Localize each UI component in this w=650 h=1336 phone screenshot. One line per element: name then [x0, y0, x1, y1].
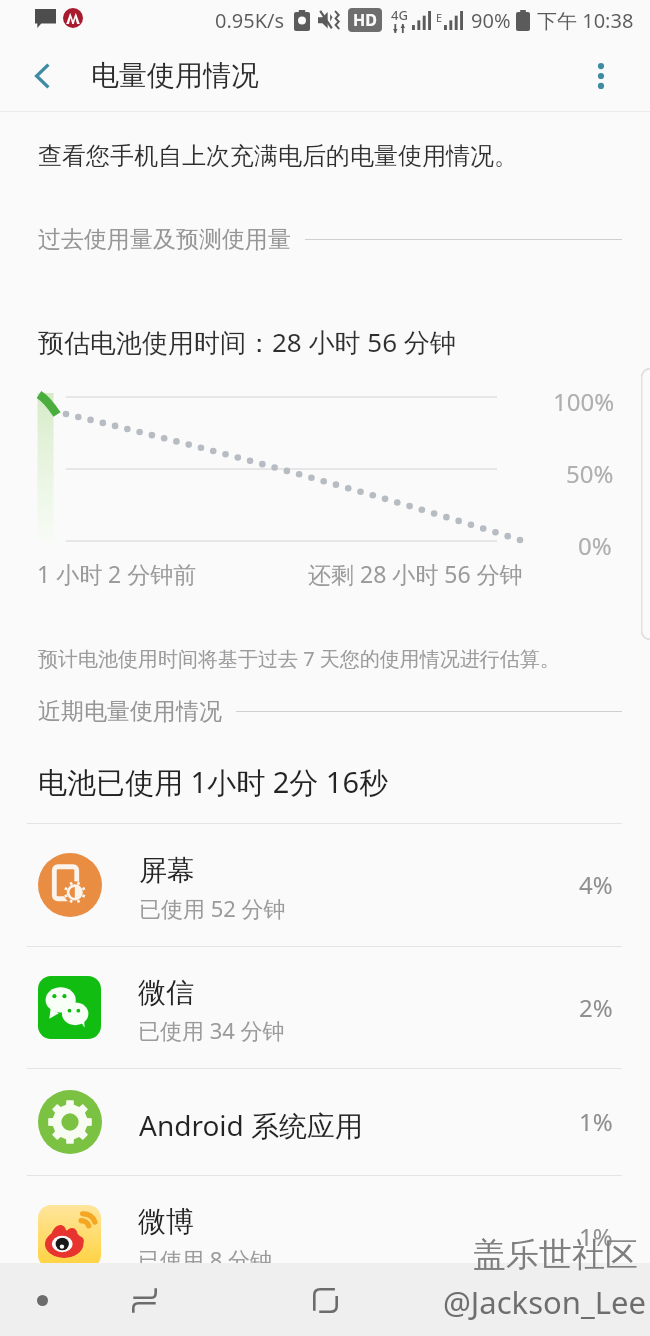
staticText: @Jackson_Lee [443, 1281, 646, 1323]
staticText: 0.95K/s [215, 7, 285, 34]
button[interactable]: Back [7, 40, 78, 111]
button[interactable]: 微信 [0, 946, 650, 1068]
staticText: 电量使用情况 [91, 58, 259, 93]
staticText: 预估电池使用时间：28 小时 56 分钟 [38, 324, 456, 360]
staticText: 电池已使用 1小时 2分 16秒 [38, 762, 388, 802]
staticText: 50% [566, 457, 614, 490]
button[interactable]: 屏幕 [0, 823, 650, 946]
staticText: 90% [471, 7, 511, 34]
staticText: 2% [579, 991, 613, 1024]
button[interactable]: More options [565, 40, 636, 111]
button[interactable]: Home [290, 1265, 360, 1335]
staticText: 1 小时 2 分钟前 [37, 558, 197, 589]
staticText: 4G [391, 6, 408, 24]
staticText: HD [353, 9, 377, 31]
staticText: Android 系统应用 [139, 1106, 364, 1144]
staticText: 已使用 34 分钟 [138, 1015, 285, 1045]
staticText: 已使用 8 分钟 [138, 1244, 273, 1274]
button[interactable]: 微博 [0, 1175, 650, 1297]
staticText: 1% [579, 1105, 613, 1138]
staticText: 100% [553, 385, 615, 418]
staticText: 查看您手机自上次充满电后的电量使用情况。 [38, 141, 518, 171]
staticText: 0% [578, 529, 612, 562]
staticText: 预计电池使用时间将基于过去 7 天您的使用情况进行估算。 [38, 645, 560, 672]
staticText: 微博 [138, 1204, 194, 1239]
staticText: 下午 10:38 [537, 7, 634, 34]
staticText: 近期电量使用情况 [38, 697, 222, 726]
staticText: 微信 [138, 975, 194, 1010]
staticText: 屏幕 [139, 853, 195, 888]
button[interactable]: Recents [109, 1265, 179, 1335]
button[interactable]: Menu [7, 1265, 77, 1335]
staticText: 4% [579, 868, 613, 901]
staticText: 还剩 28 小时 56 分钟 [308, 558, 523, 589]
staticText: 盖乐世社区 [473, 1234, 638, 1276]
button[interactable]: Android 系统应用 [0, 1068, 650, 1175]
staticText: 过去使用量及预测使用量 [38, 225, 291, 254]
staticText: 1% [579, 1220, 613, 1253]
staticText: E [436, 10, 443, 25]
staticText: 已使用 52 分钟 [139, 893, 286, 923]
